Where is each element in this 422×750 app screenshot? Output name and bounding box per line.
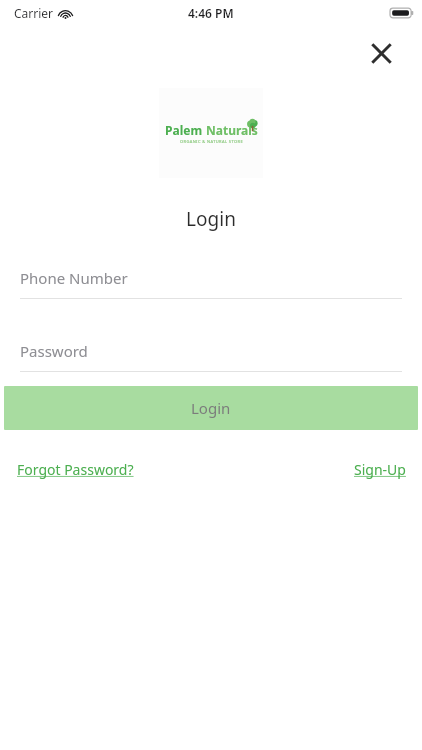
- staticText: Login: [0, 206, 422, 232]
- staticText: Naturals: [206, 122, 258, 138]
- button[interactable]: Sign-Up: [354, 460, 406, 479]
- staticText: 4:46 PM: [188, 5, 234, 21]
- staticText: Palem: [165, 122, 203, 138]
- staticText: Phone Number: [20, 268, 128, 288]
- button[interactable]: Forgot Password?: [17, 460, 134, 479]
- staticText: Forgot Password?: [17, 460, 134, 479]
- staticText: Carrier: [14, 5, 54, 21]
- staticText: Login: [191, 398, 231, 418]
- button[interactable]: Password: [0, 341, 422, 372]
- staticText: ORGANIC & NATURAL STORE: [180, 139, 244, 144]
- button[interactable]: Phone Number: [0, 268, 422, 299]
- staticText: Password: [20, 341, 88, 361]
- staticText: Sign-Up: [354, 460, 406, 479]
- button[interactable]: Close: [366, 38, 396, 68]
- button[interactable]: Login: [4, 386, 418, 430]
